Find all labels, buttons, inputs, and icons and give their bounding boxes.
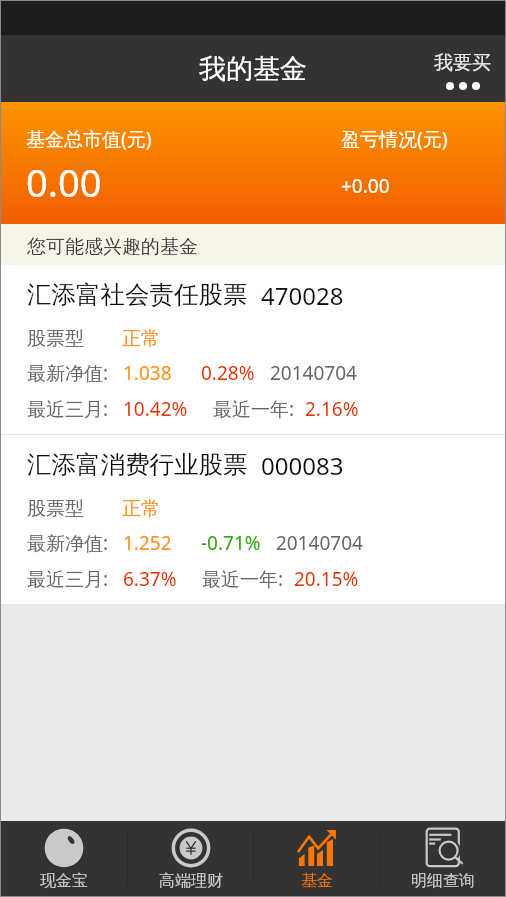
staticText: 汇添富社会责任股票 bbox=[27, 279, 248, 310]
staticText: 汇添富消费行业股票 bbox=[27, 449, 248, 480]
staticText: 明细查询 bbox=[411, 871, 475, 891]
staticText: 我的基金 bbox=[199, 52, 307, 86]
button[interactable]: 我要买 bbox=[420, 35, 505, 95]
staticText: 股票型 bbox=[27, 327, 84, 351]
staticText: 1.252 bbox=[123, 530, 172, 556]
staticText: 我要买 bbox=[434, 51, 491, 75]
staticText: 1.038 bbox=[123, 360, 172, 386]
staticText: 基金总市值(元) bbox=[26, 126, 152, 152]
staticText: 最新净值: bbox=[27, 360, 109, 386]
button[interactable]: 明细查询 bbox=[380, 821, 505, 896]
staticText: 股票型 bbox=[27, 497, 84, 521]
staticText: 最近一年: bbox=[202, 566, 284, 592]
button[interactable]: 汇添富消费行业股票 bbox=[1, 435, 505, 604]
button[interactable]: 汇添富社会责任股票 bbox=[1, 265, 505, 434]
button[interactable]: 高端理财 bbox=[128, 821, 253, 896]
staticText: 基金 bbox=[301, 871, 333, 891]
staticText: 20140704 bbox=[270, 360, 357, 386]
button[interactable]: 现金宝 bbox=[1, 821, 127, 896]
button[interactable]: 基金 bbox=[254, 821, 379, 896]
staticText: 现金宝 bbox=[40, 871, 88, 891]
staticText: 20.15% bbox=[294, 566, 359, 592]
staticText: 0.00 bbox=[26, 156, 102, 208]
staticText: 2.16% bbox=[305, 396, 359, 422]
staticText: 10.42% bbox=[123, 396, 188, 422]
staticText: 高端理财 bbox=[159, 871, 223, 891]
staticText: 470028 bbox=[261, 279, 344, 312]
staticText: 最近三月: bbox=[27, 566, 109, 592]
staticText: 最近三月: bbox=[27, 396, 109, 422]
staticText: 盈亏情况(元) bbox=[341, 126, 448, 152]
staticText: 000083 bbox=[261, 449, 344, 482]
staticText: 20140704 bbox=[276, 530, 363, 556]
staticText: -0.71% bbox=[201, 530, 261, 556]
staticText: 正常 bbox=[122, 497, 160, 521]
staticText: 0.28% bbox=[201, 360, 255, 386]
staticText: 最新净值: bbox=[27, 530, 109, 556]
staticText: +0.00 bbox=[341, 173, 390, 199]
staticText: 6.37% bbox=[123, 566, 177, 592]
staticText: 最近一年: bbox=[213, 396, 295, 422]
staticText: 正常 bbox=[122, 327, 160, 351]
staticText: 您可能感兴趣的基金 bbox=[27, 235, 198, 259]
